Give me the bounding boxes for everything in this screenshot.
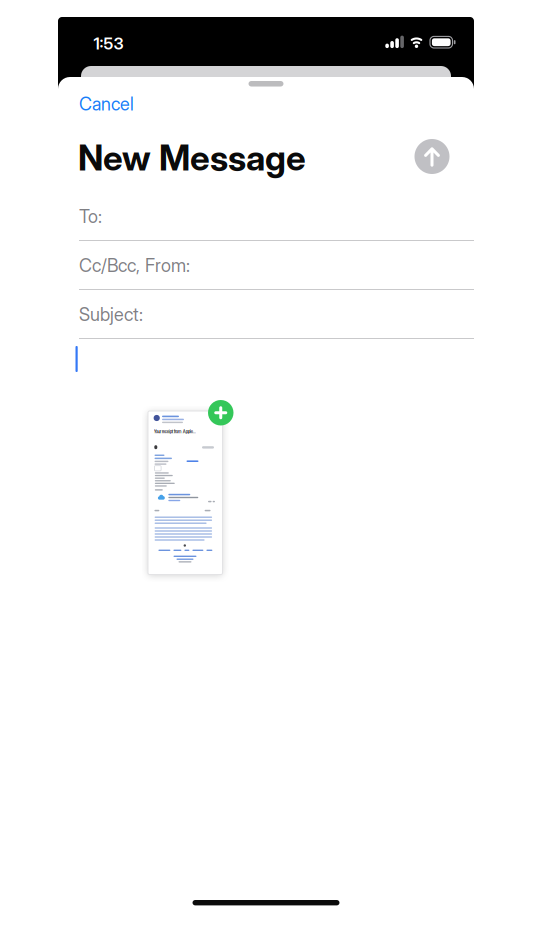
staticText: Subject: (79, 304, 143, 325)
staticText: Cc/Bcc, From: (79, 255, 190, 276)
staticText: Cancel (79, 93, 134, 115)
button[interactable]: Send (414, 139, 449, 174)
button[interactable]: To: (58, 192, 474, 241)
staticText: 1:53 (93, 33, 123, 53)
button[interactable]: Cancel (79, 93, 134, 115)
button[interactable]: Expand attachment (208, 400, 233, 425)
staticText: Your receipt from Apple... (154, 429, 196, 434)
button[interactable]: Subject: (58, 290, 474, 339)
staticText: To: (79, 206, 102, 227)
staticText: New Message (78, 136, 306, 179)
button[interactable]: Cc/Bcc, From: (58, 241, 474, 290)
button[interactable]: Attachment: Your receipt from Apple (148, 411, 222, 574)
